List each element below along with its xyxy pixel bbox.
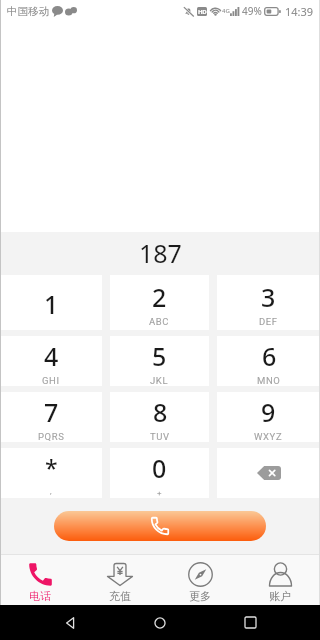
button[interactable]: 电话 [0,555,80,605]
staticText: DEF [259,316,278,327]
staticText: + [157,489,163,498]
button[interactable]: Delete [217,448,320,498]
button[interactable]: 6 [217,336,320,386]
staticText: 账户 [269,589,291,603]
button[interactable]: 2 [110,275,209,330]
staticText: 187 [139,236,182,270]
staticText: TUV [150,431,170,442]
staticText: 1 [44,287,59,321]
staticText: 4G [222,7,230,15]
button[interactable]: Recents [230,605,270,640]
button[interactable]: 1 [0,275,102,330]
button[interactable]: 更多 [160,555,240,605]
button[interactable]: 7 [0,392,102,442]
button[interactable]: Home [140,605,180,640]
staticText: JKL [150,375,169,386]
button[interactable]: 充值 [80,555,160,605]
button[interactable]: 8 [110,392,209,442]
staticText: 电话 [29,589,51,603]
button[interactable]: Call [54,511,266,541]
button[interactable]: 账户 [240,555,320,605]
staticText: 充值 [109,589,131,603]
button[interactable]: 4 [0,336,102,386]
staticText: PQRS [38,431,65,442]
staticText: 8 [153,395,168,429]
staticText: 49% [242,4,262,18]
staticText: HD [198,8,207,16]
staticText: WXYZ [254,431,283,442]
staticText: 9 [261,395,276,429]
button[interactable]: 0 [110,448,209,498]
button[interactable]: 3 [217,275,320,330]
button[interactable]: * [0,448,102,498]
staticText: 中国移动 [7,5,49,18]
staticText: , [50,487,53,496]
staticText: 6 [262,339,277,373]
staticText: 0 [152,451,167,485]
staticText: 7 [44,395,59,429]
button[interactable]: Back [50,605,90,640]
staticText: GHI [42,375,60,386]
staticText: * [45,452,58,483]
staticText: 4 [44,339,59,373]
staticText: 2 [152,280,167,314]
staticText: ABC [149,316,170,327]
staticText: 3 [261,280,276,314]
staticText: MNO [257,375,281,386]
staticText: 更多 [189,589,211,603]
button[interactable]: 5 [110,336,209,386]
button[interactable]: 9 [217,392,320,442]
staticText: 5 [152,339,167,373]
staticText: 14:39 [285,4,314,19]
